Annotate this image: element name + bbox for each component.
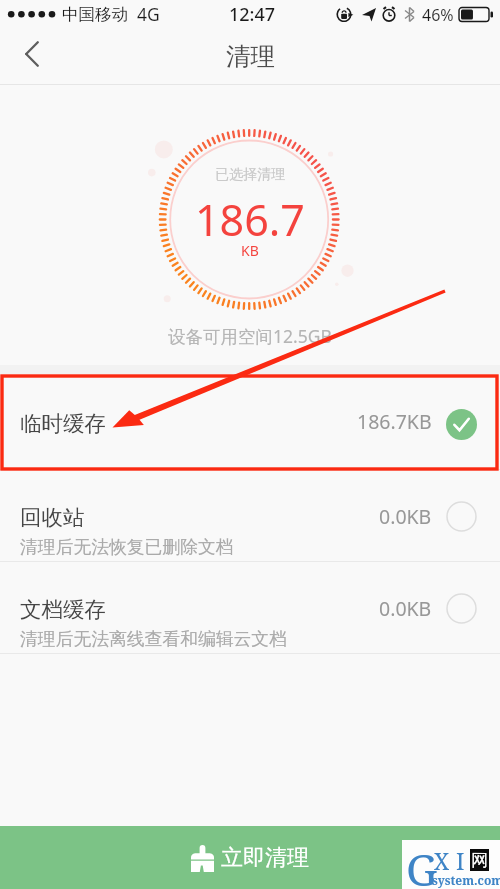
button[interactable]: 临时缓存 — [0, 374, 500, 469]
staticText: 已选择清理 — [215, 166, 285, 184]
staticText: KB — [241, 241, 259, 260]
staticText: 临时缓存 — [20, 410, 106, 437]
staticText: system.com — [432, 872, 500, 888]
staticText: 0.0KB — [379, 595, 432, 622]
staticText: 186.7 — [195, 190, 305, 249]
staticText: 文档缓存 — [20, 596, 106, 623]
button[interactable]: 立即清理 — [0, 826, 500, 889]
staticText: 清理后无法离线查看和编辑云文档 — [20, 628, 287, 650]
staticText: 0.0KB — [379, 503, 432, 530]
staticText: 清理 — [226, 41, 275, 72]
staticText: 清理后无法恢复已删除文档 — [20, 536, 234, 558]
staticText: 4G — [137, 2, 160, 26]
staticText: 网 — [471, 850, 488, 871]
staticText: 设备可用空间12.5GB — [168, 324, 332, 348]
button[interactable]: 文档缓存 — [0, 562, 500, 653]
button[interactable]: Back — [10, 32, 54, 76]
staticText: 中国移动 — [62, 4, 128, 25]
staticText: I — [456, 845, 465, 876]
staticText: 立即清理 — [221, 844, 309, 872]
staticText: X — [434, 845, 450, 876]
staticText: 46% — [422, 4, 454, 26]
staticText: G — [406, 839, 438, 889]
staticText: 186.7KB — [357, 408, 432, 435]
button[interactable]: 回收站 — [0, 470, 500, 561]
staticText: 12:47 — [229, 2, 276, 27]
staticText: 回收站 — [20, 504, 85, 531]
